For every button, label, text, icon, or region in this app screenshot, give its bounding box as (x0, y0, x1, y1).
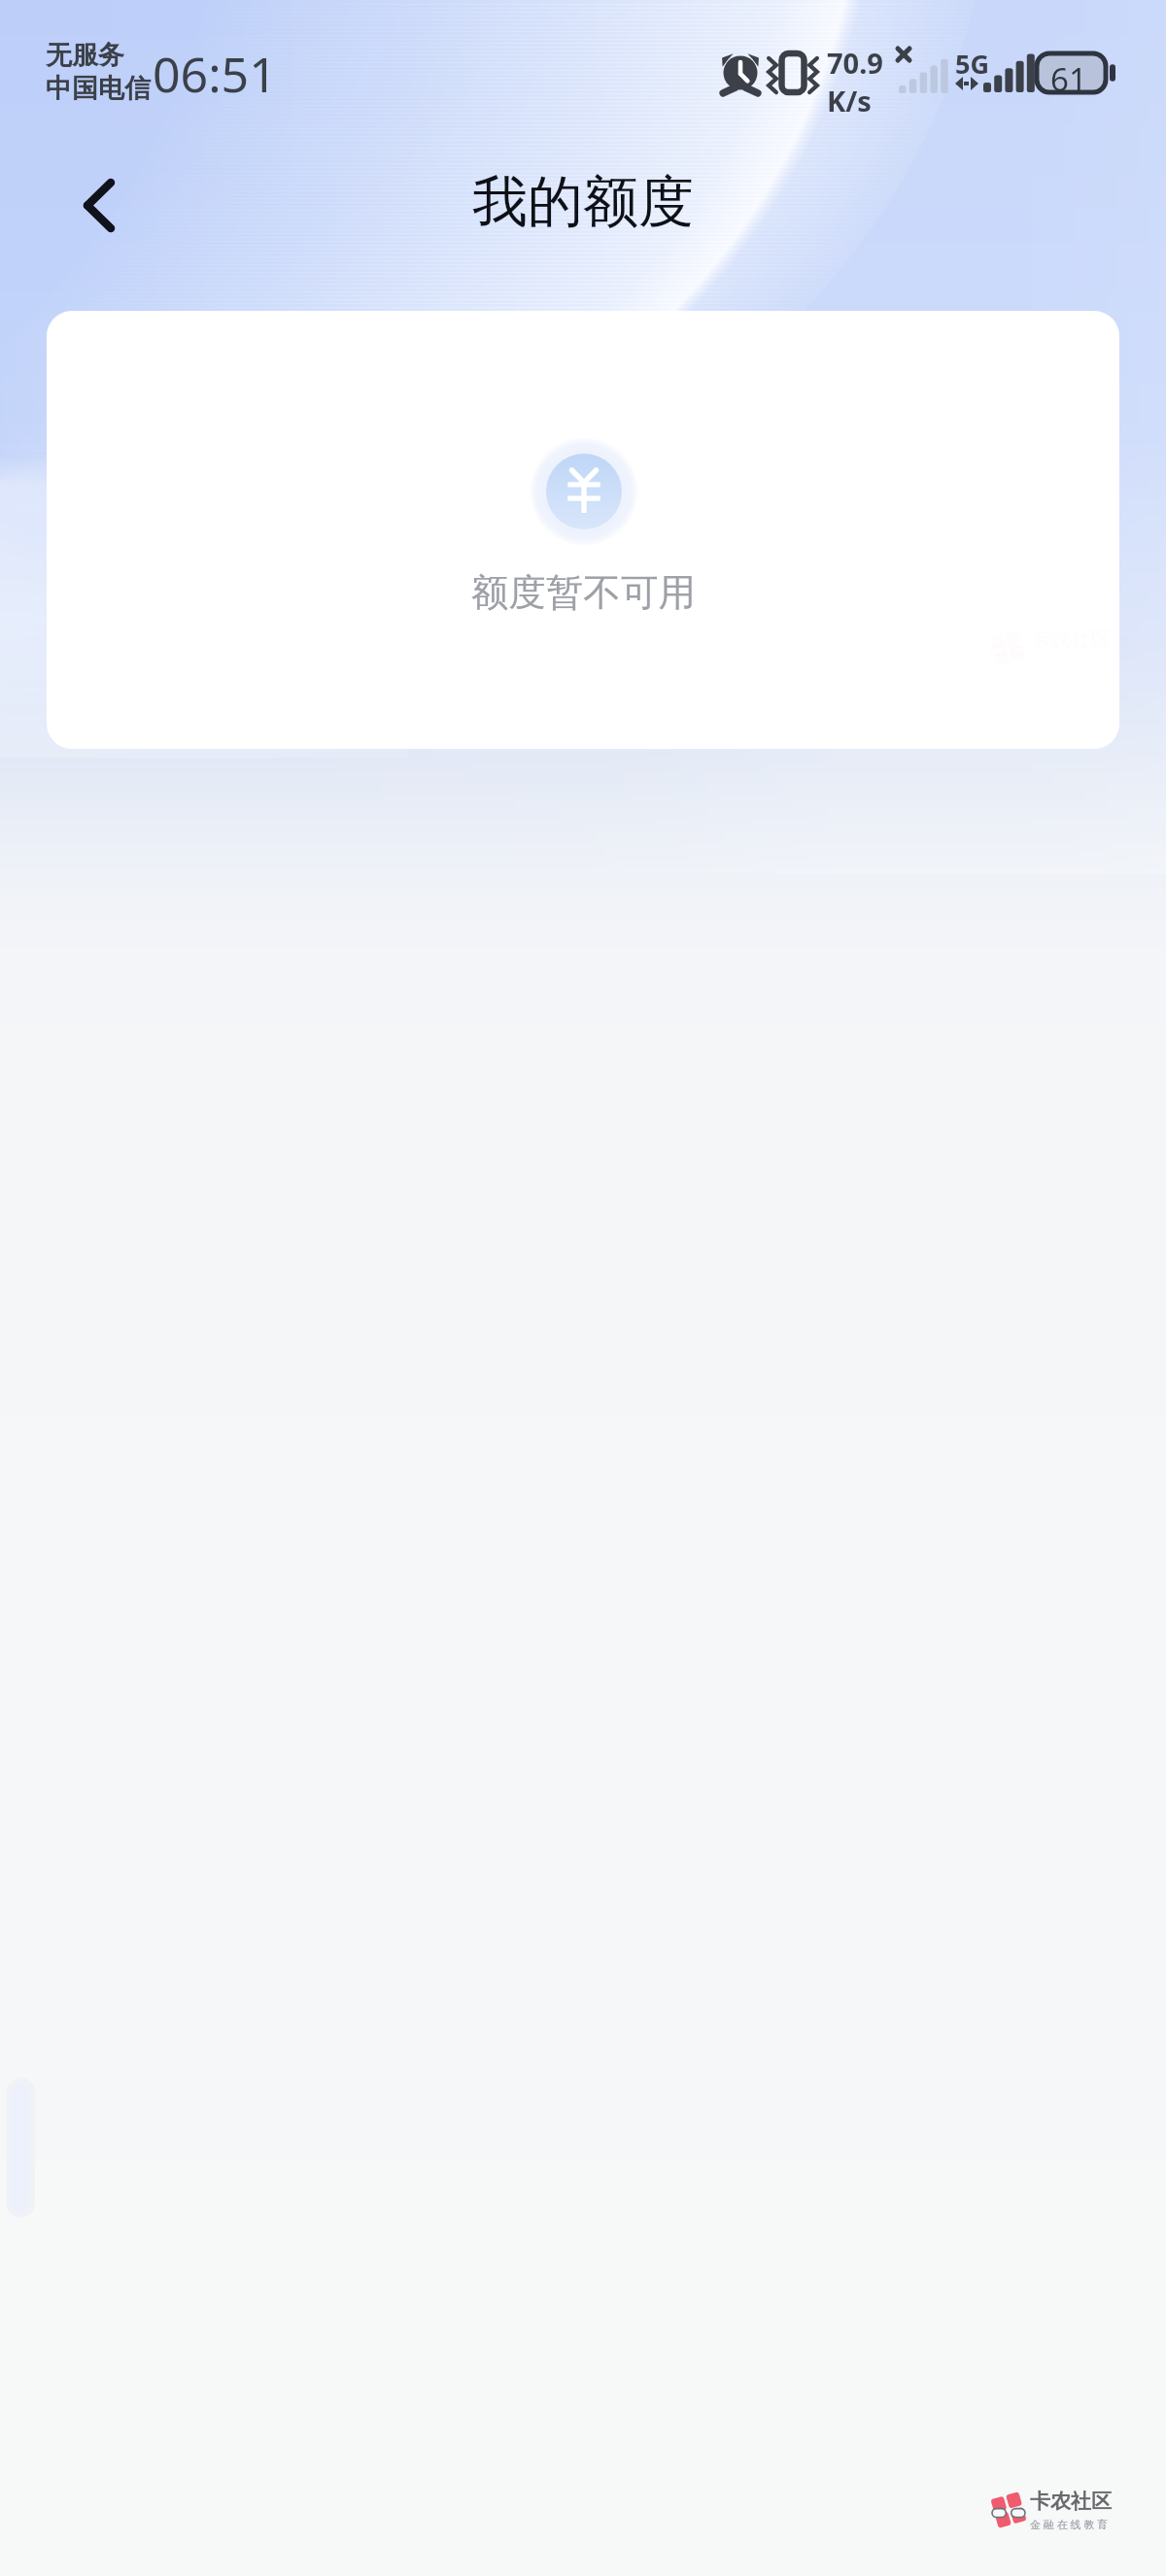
staticText: 金 融 在 线 教 育 (1030, 2517, 1109, 2531)
staticText: K/s (827, 82, 872, 119)
staticText: 70.9 (827, 44, 883, 82)
staticText: 卡农社区 (1030, 2489, 1112, 2514)
staticText: 61 (1050, 57, 1087, 98)
staticText: 我的额度 (472, 167, 694, 237)
staticText: 额度暂不可用 (471, 569, 696, 617)
staticText: 中国电信 (46, 72, 151, 105)
staticText: 无服务 (46, 39, 124, 72)
button[interactable]: Back (55, 161, 143, 249)
staticText: 06:51 (153, 41, 277, 107)
staticText: 5G (955, 46, 989, 82)
